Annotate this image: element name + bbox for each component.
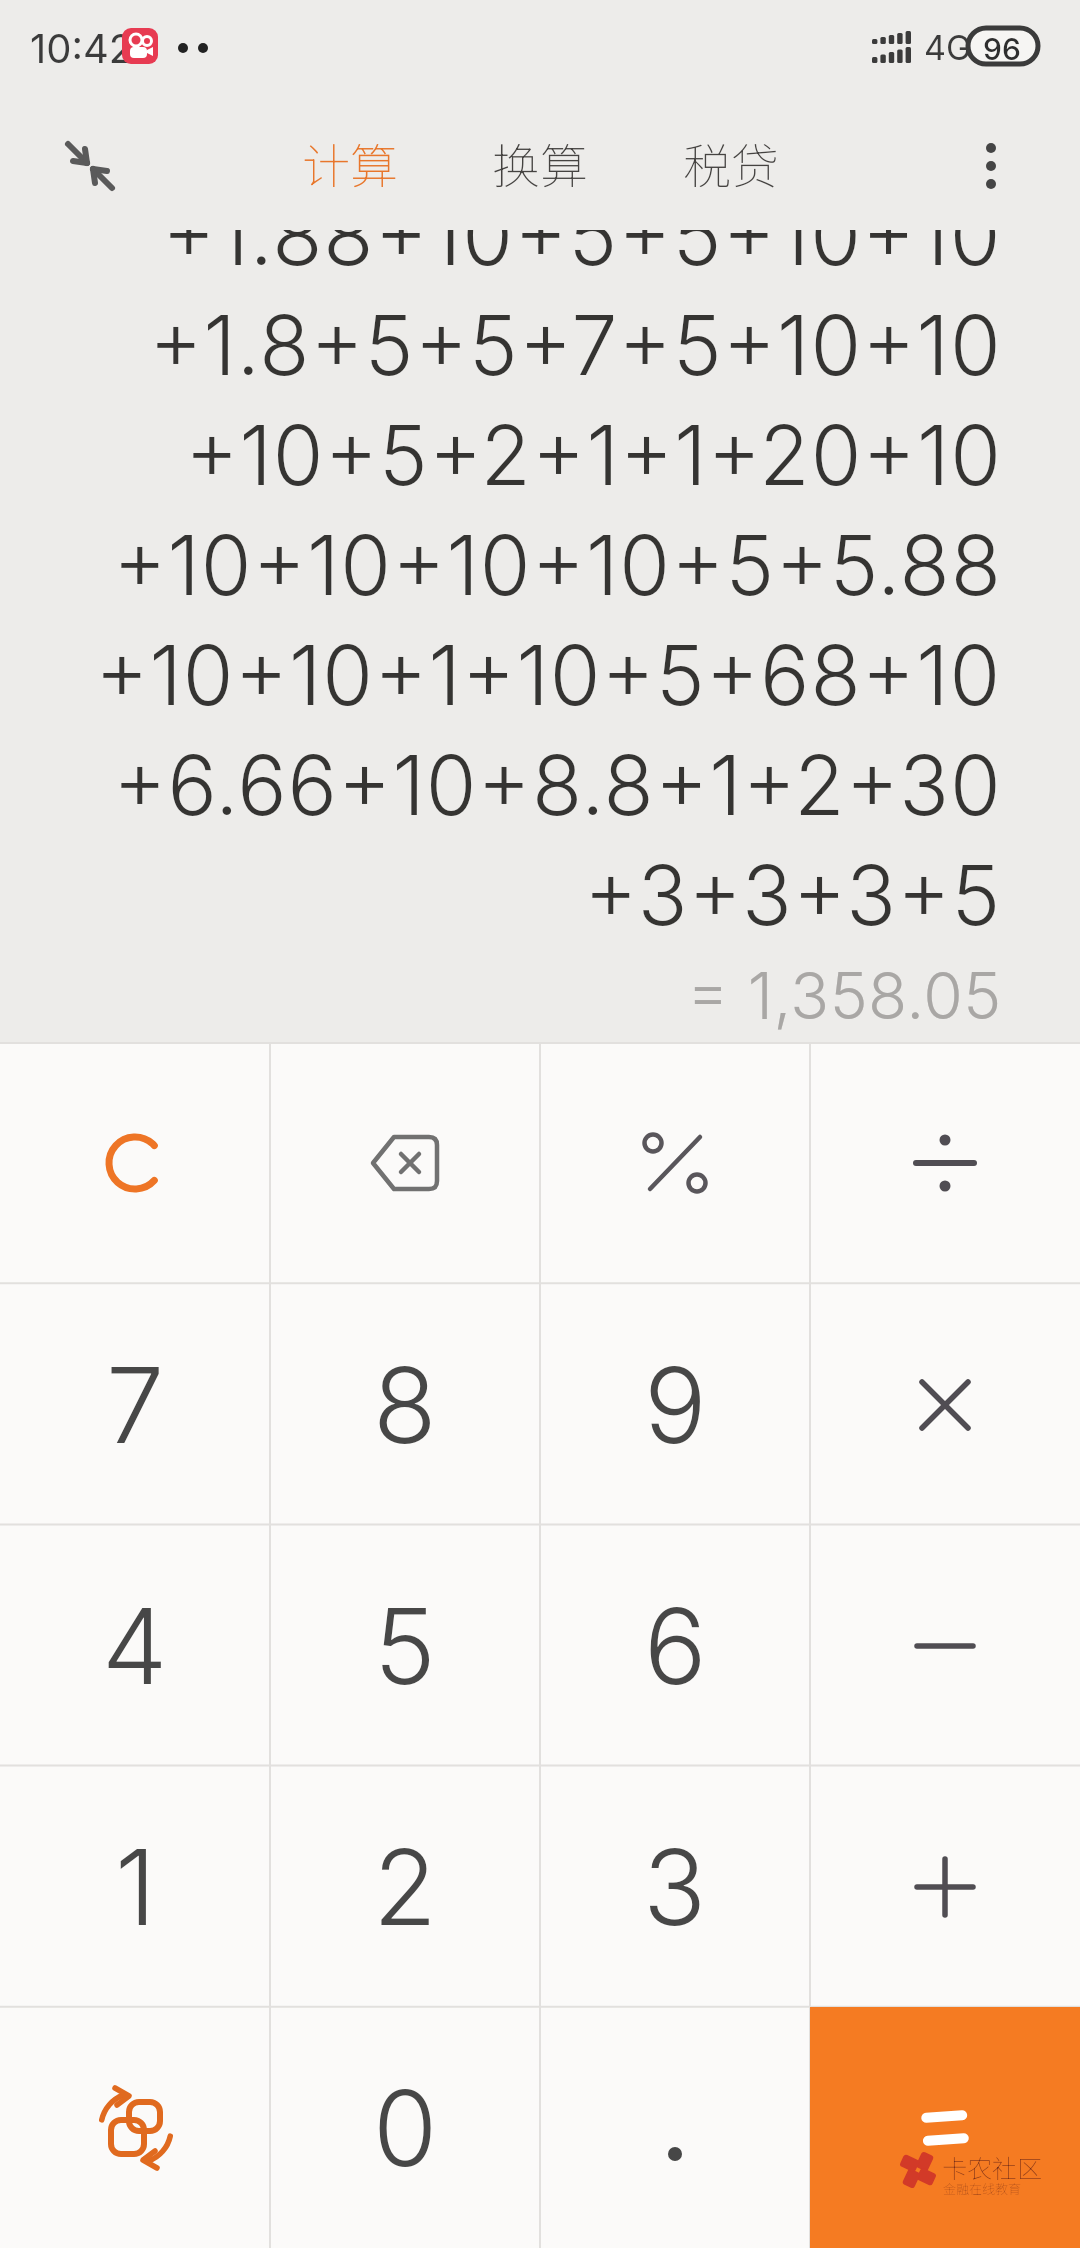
staticText: 税贷: [683, 128, 780, 198]
staticText: 4: [102, 1583, 168, 1709]
button[interactable]: [810, 1284, 1080, 1525]
staticText: 2: [373, 1824, 437, 1950]
button[interactable]: 0: [270, 2007, 540, 2248]
staticText: +10+10+10+10+5+5.88: [113, 516, 1002, 615]
button[interactable]: [810, 1525, 1080, 1766]
staticText: 6: [644, 1583, 707, 1709]
button[interactable]: [270, 1042, 540, 1284]
staticText: 1: [115, 1824, 156, 1950]
staticText: 7: [106, 1342, 165, 1468]
button[interactable]: 9: [540, 1284, 810, 1525]
staticText: 3: [643, 1824, 707, 1950]
staticText: 96: [983, 31, 1021, 67]
staticText: +1.88+10+5+5+10+10: [162, 230, 1002, 285]
staticText: +10+5+2+1+1+20+10: [185, 406, 1002, 505]
staticText: +3+3+3+5: [584, 846, 1002, 945]
button[interactable]: [810, 1766, 1080, 2007]
button[interactable]: 2: [270, 1766, 540, 2007]
staticText: 8: [373, 1342, 437, 1468]
staticText: +1.8+5+5+7+5+10+10: [149, 296, 1002, 395]
button[interactable]: 8: [270, 1284, 540, 1525]
staticText: 计算: [302, 128, 399, 198]
staticText: 金融在线教育: [943, 2179, 1022, 2198]
staticText: 10:42: [30, 24, 134, 72]
button[interactable]: [966, 128, 1016, 198]
button[interactable]: 5: [270, 1525, 540, 1766]
button[interactable]: 7: [0, 1284, 270, 1525]
button[interactable]: 税贷: [683, 128, 780, 198]
staticText: 卡农社区: [942, 2149, 1043, 2185]
staticText: +10+10+1+10+5+68+10: [95, 626, 1002, 725]
button[interactable]: 换算: [492, 128, 589, 198]
staticText: 5: [374, 1583, 436, 1709]
staticText: 9: [644, 1342, 707, 1468]
staticText: +6.66+10+8.8+1+2+30: [113, 736, 1002, 835]
button[interactable]: [810, 1042, 1080, 1284]
button[interactable]: [0, 1042, 270, 1284]
button[interactable]: 3: [540, 1766, 810, 2007]
staticText: 换算: [492, 128, 589, 198]
button[interactable]: 计算: [302, 128, 399, 198]
button[interactable]: 6: [540, 1525, 810, 1766]
staticText: = 1,358.05: [687, 957, 1002, 1034]
button[interactable]: 4: [0, 1525, 270, 1766]
button[interactable]: [56, 132, 120, 196]
staticText: 0: [373, 2065, 438, 2191]
button[interactable]: [540, 2007, 810, 2248]
button[interactable]: 1: [0, 1766, 270, 2007]
staticText: 4G: [924, 27, 972, 68]
button[interactable]: [0, 2007, 270, 2248]
button[interactable]: [540, 1042, 810, 1284]
button[interactable]: 卡农社区: [810, 2007, 1080, 2248]
